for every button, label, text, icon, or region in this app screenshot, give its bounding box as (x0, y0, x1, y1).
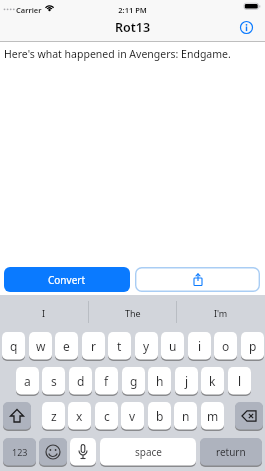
button[interactable]: q (2, 332, 25, 360)
staticText: x (76, 408, 83, 424)
staticText: b (156, 408, 164, 424)
staticText: d (77, 373, 85, 389)
button[interactable]: u (161, 332, 184, 360)
button[interactable]: I'm (177, 295, 265, 331)
staticText: a (24, 373, 31, 389)
button[interactable]: d (69, 367, 92, 395)
button[interactable]: space (100, 438, 196, 466)
staticText: n (182, 408, 190, 424)
staticText: q (10, 338, 18, 354)
staticText: 123 (12, 446, 28, 458)
staticText: v (129, 408, 136, 424)
button[interactable]: n (174, 402, 197, 430)
button[interactable]: e (55, 332, 78, 360)
staticText: The (125, 307, 141, 319)
staticText: Convert (48, 273, 86, 287)
button[interactable] (135, 267, 260, 292)
button[interactable]: f (95, 367, 118, 395)
button[interactable]: 123 (3, 438, 36, 466)
staticText: t (117, 338, 122, 354)
button[interactable]: j (175, 367, 198, 395)
button[interactable]: i (188, 332, 211, 360)
staticText: m (207, 408, 219, 424)
staticText: s (51, 373, 57, 389)
staticText: 2:11 PM (0, 5, 265, 15)
staticText: i (198, 338, 202, 354)
staticText: l (238, 373, 242, 389)
button[interactable]: w (29, 332, 52, 360)
button[interactable]: y (135, 332, 158, 360)
staticText: f (104, 373, 109, 389)
button[interactable]: h (148, 367, 171, 395)
staticText: Here's what happened in Avengers: Endgam… (4, 47, 231, 61)
button[interactable]: m (201, 402, 224, 430)
staticText: j (185, 373, 189, 389)
staticText: I (42, 307, 46, 319)
staticText: w (36, 338, 46, 354)
button[interactable]: v (121, 402, 144, 430)
button[interactable]: r (82, 332, 105, 360)
button[interactable] (70, 438, 96, 466)
staticText: y (143, 338, 150, 354)
staticText: u (169, 338, 177, 354)
staticText: I'm (214, 307, 228, 319)
button[interactable]: l (228, 367, 251, 395)
button[interactable]: x (68, 402, 91, 430)
staticText: r (91, 338, 96, 354)
button[interactable] (3, 402, 31, 430)
button[interactable] (39, 438, 67, 466)
staticText: o (222, 338, 230, 354)
button[interactable]: b (148, 402, 171, 430)
button[interactable] (236, 17, 257, 38)
staticText: g (130, 373, 138, 389)
button[interactable]: k (201, 367, 224, 395)
staticText: z (51, 408, 57, 424)
button[interactable]: t (108, 332, 131, 360)
staticText: space (135, 445, 162, 459)
staticText: h (156, 373, 164, 389)
staticText: return (216, 445, 246, 459)
staticText: k (209, 373, 216, 389)
staticText: Carrier (16, 5, 42, 15)
staticText: e (63, 338, 70, 354)
button[interactable]: s (42, 367, 65, 395)
button[interactable]: I (0, 295, 88, 331)
staticText: Rot13 (0, 19, 265, 35)
button[interactable]: z (42, 402, 65, 430)
button[interactable] (235, 402, 263, 430)
button[interactable]: o (214, 332, 237, 360)
button[interactable]: g (122, 367, 145, 395)
button[interactable]: p (241, 332, 264, 360)
staticText: p (249, 338, 257, 354)
button[interactable]: The (89, 295, 176, 331)
button[interactable]: a (16, 367, 39, 395)
button[interactable]: return (200, 438, 262, 466)
button[interactable]: Convert (4, 267, 130, 292)
staticText: c (104, 408, 110, 424)
button[interactable]: c (95, 402, 118, 430)
